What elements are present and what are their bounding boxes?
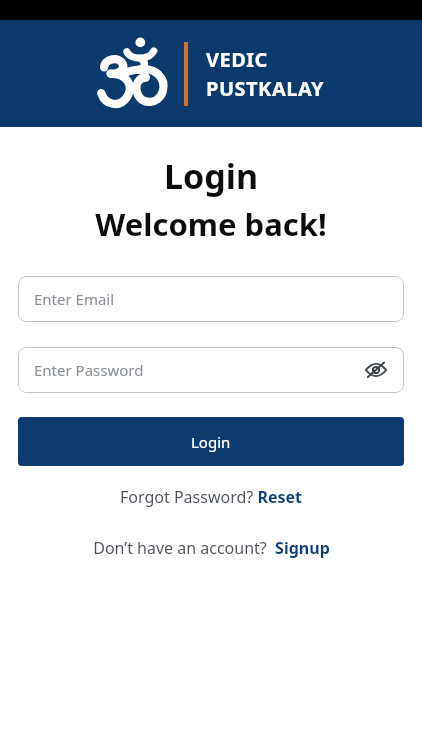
staticText: Welcome back!: [0, 203, 422, 245]
staticText: Enter Email: [34, 289, 115, 309]
staticText: Login: [0, 153, 422, 199]
staticText: VEDIC: [206, 46, 268, 73]
button[interactable]: Show password: [362, 356, 390, 384]
staticText: Login: [191, 432, 231, 452]
button[interactable]: Enter Email: [18, 276, 404, 322]
staticText: Forgot Password? Reset: [120, 486, 302, 508]
button[interactable]: Forgot Password? Reset: [0, 480, 422, 514]
staticText: PUSTKALAY: [206, 75, 325, 102]
staticText: Enter Password: [34, 360, 144, 380]
button[interactable]: Don’t have an account? Signup: [0, 531, 422, 565]
staticText: Don’t have an account? Signup: [93, 537, 330, 559]
button[interactable]: Enter Password: [18, 347, 404, 393]
button[interactable]: Login: [18, 417, 404, 466]
